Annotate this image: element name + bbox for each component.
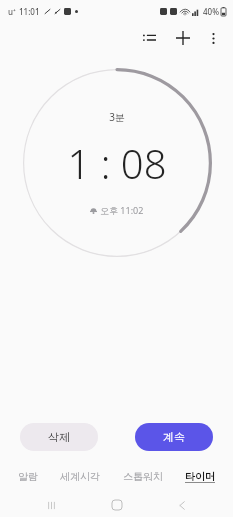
- staticText: 1 : 08: [67, 136, 167, 190]
- staticText: 11:01: [19, 6, 40, 17]
- staticText: 타이머: [185, 470, 215, 483]
- button[interactable]: 타이머: [179, 467, 221, 486]
- staticText: u⁺: [8, 6, 16, 17]
- button[interactable]: 알람: [12, 467, 44, 486]
- staticText: 세계시각: [60, 470, 100, 483]
- button[interactable]: 세계시각: [54, 467, 106, 486]
- staticText: 삭제: [48, 430, 70, 444]
- staticText: 40%: [203, 6, 219, 17]
- button[interactable]: 삭제: [20, 423, 98, 451]
- button[interactable]: Preset timers list: [135, 24, 163, 52]
- button[interactable]: Recent apps: [36, 493, 66, 517]
- button[interactable]: Back: [167, 493, 197, 517]
- staticText: 3분: [109, 110, 125, 124]
- staticText: 계속: [163, 430, 185, 444]
- staticText: 알람: [18, 470, 38, 483]
- button[interactable]: 스톱워치: [117, 467, 169, 486]
- staticText: 스톱워치: [123, 470, 163, 483]
- button[interactable]: 계속: [135, 423, 213, 451]
- button[interactable]: More options: [199, 24, 227, 52]
- button[interactable]: Add timer: [169, 24, 197, 52]
- staticText: 오후 11:02: [100, 204, 144, 216]
- button[interactable]: Home: [102, 493, 132, 517]
